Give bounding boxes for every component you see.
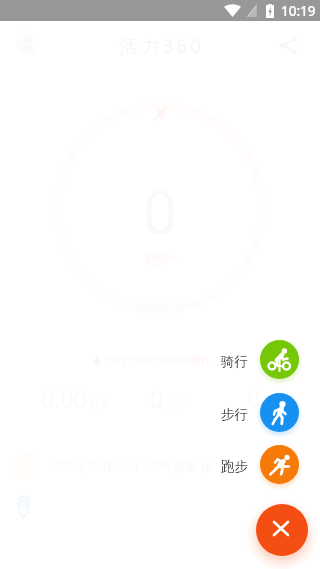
staticText: 骑行 [221, 353, 248, 370]
staticText: 步行 [221, 406, 248, 423]
button[interactable]: Close menu [256, 504, 308, 556]
button[interactable]: 骑行 [221, 340, 299, 379]
staticText: 10:19 [281, 2, 316, 20]
button[interactable]: 跑步 [221, 445, 299, 484]
staticText: 趋势> [144, 249, 178, 267]
staticText: 分钟 [263, 396, 285, 410]
staticText: 节约了0.0个水瓶的塑料 [106, 353, 211, 367]
staticText: 优 [201, 459, 213, 474]
staticText: 跑步 [221, 458, 248, 475]
button[interactable]: 步行 [221, 393, 299, 432]
staticText: 0 [247, 383, 261, 414]
